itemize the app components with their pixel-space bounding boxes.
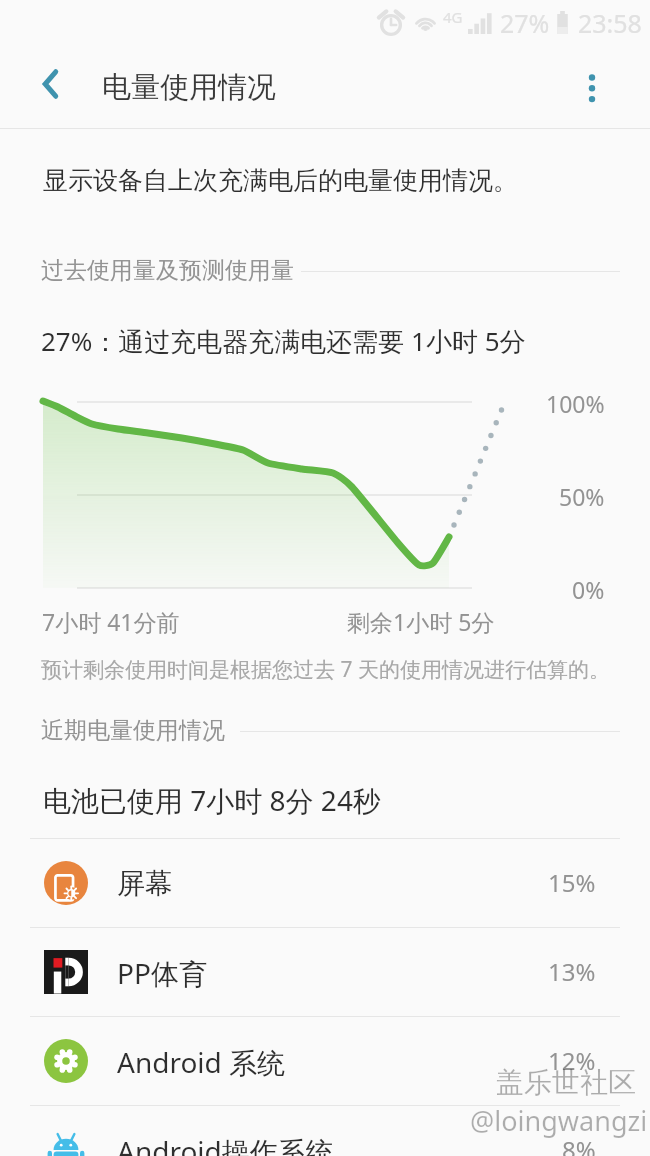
staticText: 50%: [559, 481, 605, 512]
staticText: 27%：通过充电器充满电还需要 1小时 5分: [41, 323, 526, 359]
staticText: 7小时 41分前: [42, 606, 180, 637]
staticText: 27%: [500, 6, 550, 40]
staticText: 剩余1小时 5分: [347, 606, 495, 637]
staticText: 23:58: [578, 6, 642, 40]
staticText: 100%: [546, 388, 605, 419]
button[interactable]: Back: [14, 48, 86, 120]
staticText: 0%: [572, 574, 605, 605]
staticText: 13%: [548, 955, 596, 988]
staticText: PP体育: [117, 954, 207, 992]
staticText: Android操作系统: [117, 1132, 334, 1156]
staticText: Android 系统: [117, 1043, 286, 1081]
staticText: 盖乐世社区: [496, 1065, 636, 1100]
button[interactable]: 屏幕: [0, 838, 650, 927]
button[interactable]: PP体育: [0, 927, 650, 1016]
staticText: 过去使用量及预测使用量: [41, 256, 294, 285]
staticText: 15%: [548, 866, 596, 899]
button[interactable]: Android操作系统: [0, 1105, 650, 1156]
button[interactable]: More options: [556, 52, 628, 124]
staticText: 电池已使用 7小时 8分 24秒: [43, 781, 381, 819]
staticText: 近期电量使用情况: [41, 716, 225, 745]
staticText: 预计剩余使用时间是根据您过去 7 天的使用情况进行估算的。: [41, 655, 610, 684]
staticText: 屏幕: [117, 866, 173, 901]
staticText: 电量使用情况: [102, 69, 276, 106]
button[interactable]: Android 系统: [0, 1016, 650, 1105]
staticText: @loingwangzi: [470, 1102, 648, 1139]
staticText: 显示设备自上次充满电后的电量使用情况。: [43, 165, 518, 196]
staticText: 4G: [443, 7, 463, 27]
staticText: 12%: [548, 1044, 596, 1077]
staticText: 8%: [562, 1133, 596, 1156]
